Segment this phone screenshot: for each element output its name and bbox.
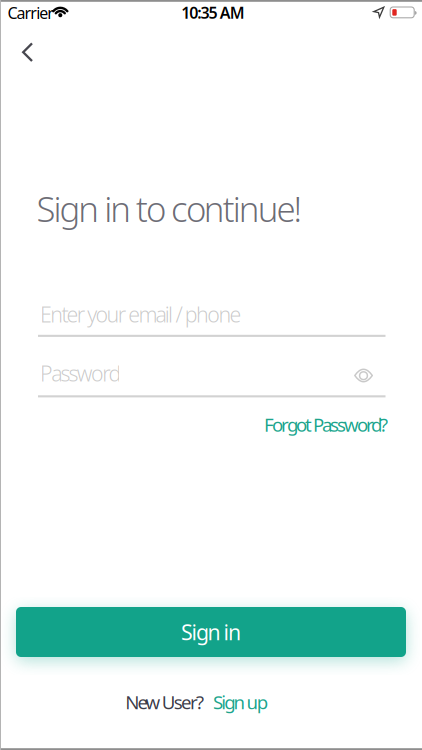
staticText: Sign in — [181, 618, 241, 646]
staticText: Forgot Password? — [264, 412, 388, 437]
staticText: Sign in to continue! — [36, 185, 303, 231]
button[interactable] — [346, 361, 382, 391]
button[interactable]: Sign up — [213, 689, 268, 714]
button[interactable]: Sign in — [16, 607, 406, 657]
staticText: New User? — [125, 689, 204, 714]
staticText: Password — [40, 359, 121, 387]
staticText: Carrier — [7, 2, 54, 23]
staticText: 10:35 AM — [181, 2, 245, 23]
staticText: Sign up — [213, 689, 268, 714]
button[interactable] — [6, 31, 50, 75]
staticText: Enter your email / phone — [40, 300, 242, 328]
button[interactable]: Forgot Password? — [264, 412, 388, 437]
